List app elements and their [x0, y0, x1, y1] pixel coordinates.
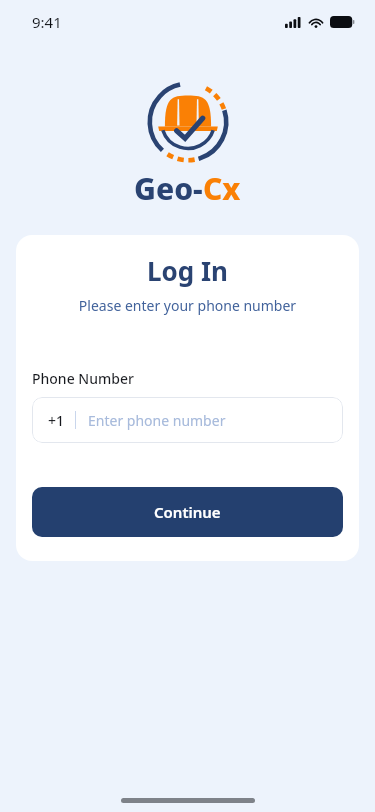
staticText: Geo- [134, 168, 203, 209]
button[interactable]: Continue [32, 487, 343, 537]
staticText: Cx [203, 168, 241, 209]
staticText: Continue [154, 502, 221, 522]
staticText: +1 [48, 411, 65, 430]
staticText: Phone Number [32, 369, 134, 388]
staticText: 9:41 [32, 12, 62, 32]
staticText: Please enter your phone number [32, 296, 343, 315]
button[interactable]: +1 [32, 397, 343, 443]
staticText: Log In [32, 253, 343, 288]
staticText: Enter phone number [88, 411, 226, 430]
